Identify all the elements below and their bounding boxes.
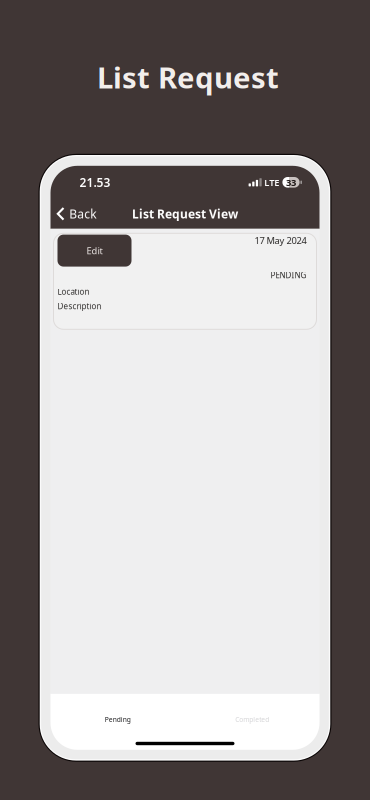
staticText: List Request View [132,206,238,222]
button[interactable]: Completed [185,698,319,740]
staticText: PENDING [270,270,306,280]
staticText: Back [69,206,96,222]
staticText: Completed [235,715,269,724]
button[interactable]: Back [50,199,102,229]
staticText: Location [57,286,89,297]
button[interactable]: Pending [50,698,185,740]
staticText: List Request [97,57,279,96]
button[interactable]: Edit [57,235,131,267]
staticText: 33 [286,176,296,188]
staticText: 17 May 2024 [254,234,306,247]
staticText: LTE [264,176,279,188]
staticText: 21.53 [79,174,110,190]
staticText: Description [57,301,101,311]
staticText: Edit [86,244,102,257]
staticText: Pending [105,715,131,724]
